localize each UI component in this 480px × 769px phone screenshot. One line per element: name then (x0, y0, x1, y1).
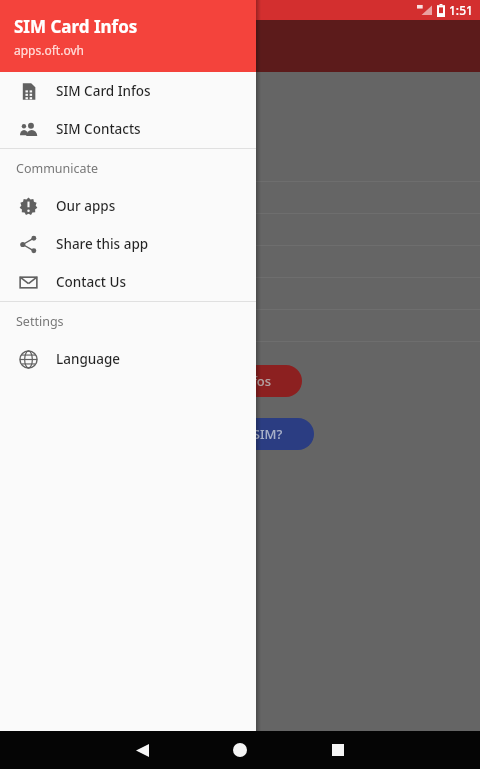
button[interactable]: SIM Card Infos (150, 365, 302, 397)
button[interactable]: Our apps (0, 187, 256, 225)
staticText: Settings (16, 313, 64, 330)
staticText: SIM Card Infos (14, 15, 138, 38)
staticText: Share this app (56, 235, 149, 253)
staticText: Our apps (56, 197, 116, 215)
button[interactable]: Contact Us (0, 263, 256, 301)
staticText: Contact Us (56, 273, 127, 291)
button[interactable]: Home (222, 732, 258, 768)
button[interactable]: Language (0, 340, 256, 378)
staticText: SIM Card Infos (180, 372, 272, 390)
button[interactable]: SIM Contacts (0, 110, 256, 148)
staticText: Communicate (16, 160, 99, 177)
button[interactable]: What is a dual SIM? (130, 418, 314, 450)
button[interactable]: SIM Card Infos (0, 0, 256, 72)
staticText: Language (56, 350, 121, 368)
staticText: 1:51 (449, 2, 473, 18)
button[interactable]: Back (124, 732, 160, 768)
staticText: apps.oft.ovh (14, 42, 84, 58)
button[interactable]: SIM Card Infos (0, 72, 256, 110)
button[interactable]: Recent apps (320, 732, 356, 768)
staticText: What is a dual SIM? (162, 425, 283, 443)
button[interactable]: Share this app (0, 225, 256, 263)
staticText: SIM Card Infos (56, 82, 151, 100)
staticText: SIM Contacts (56, 120, 141, 138)
